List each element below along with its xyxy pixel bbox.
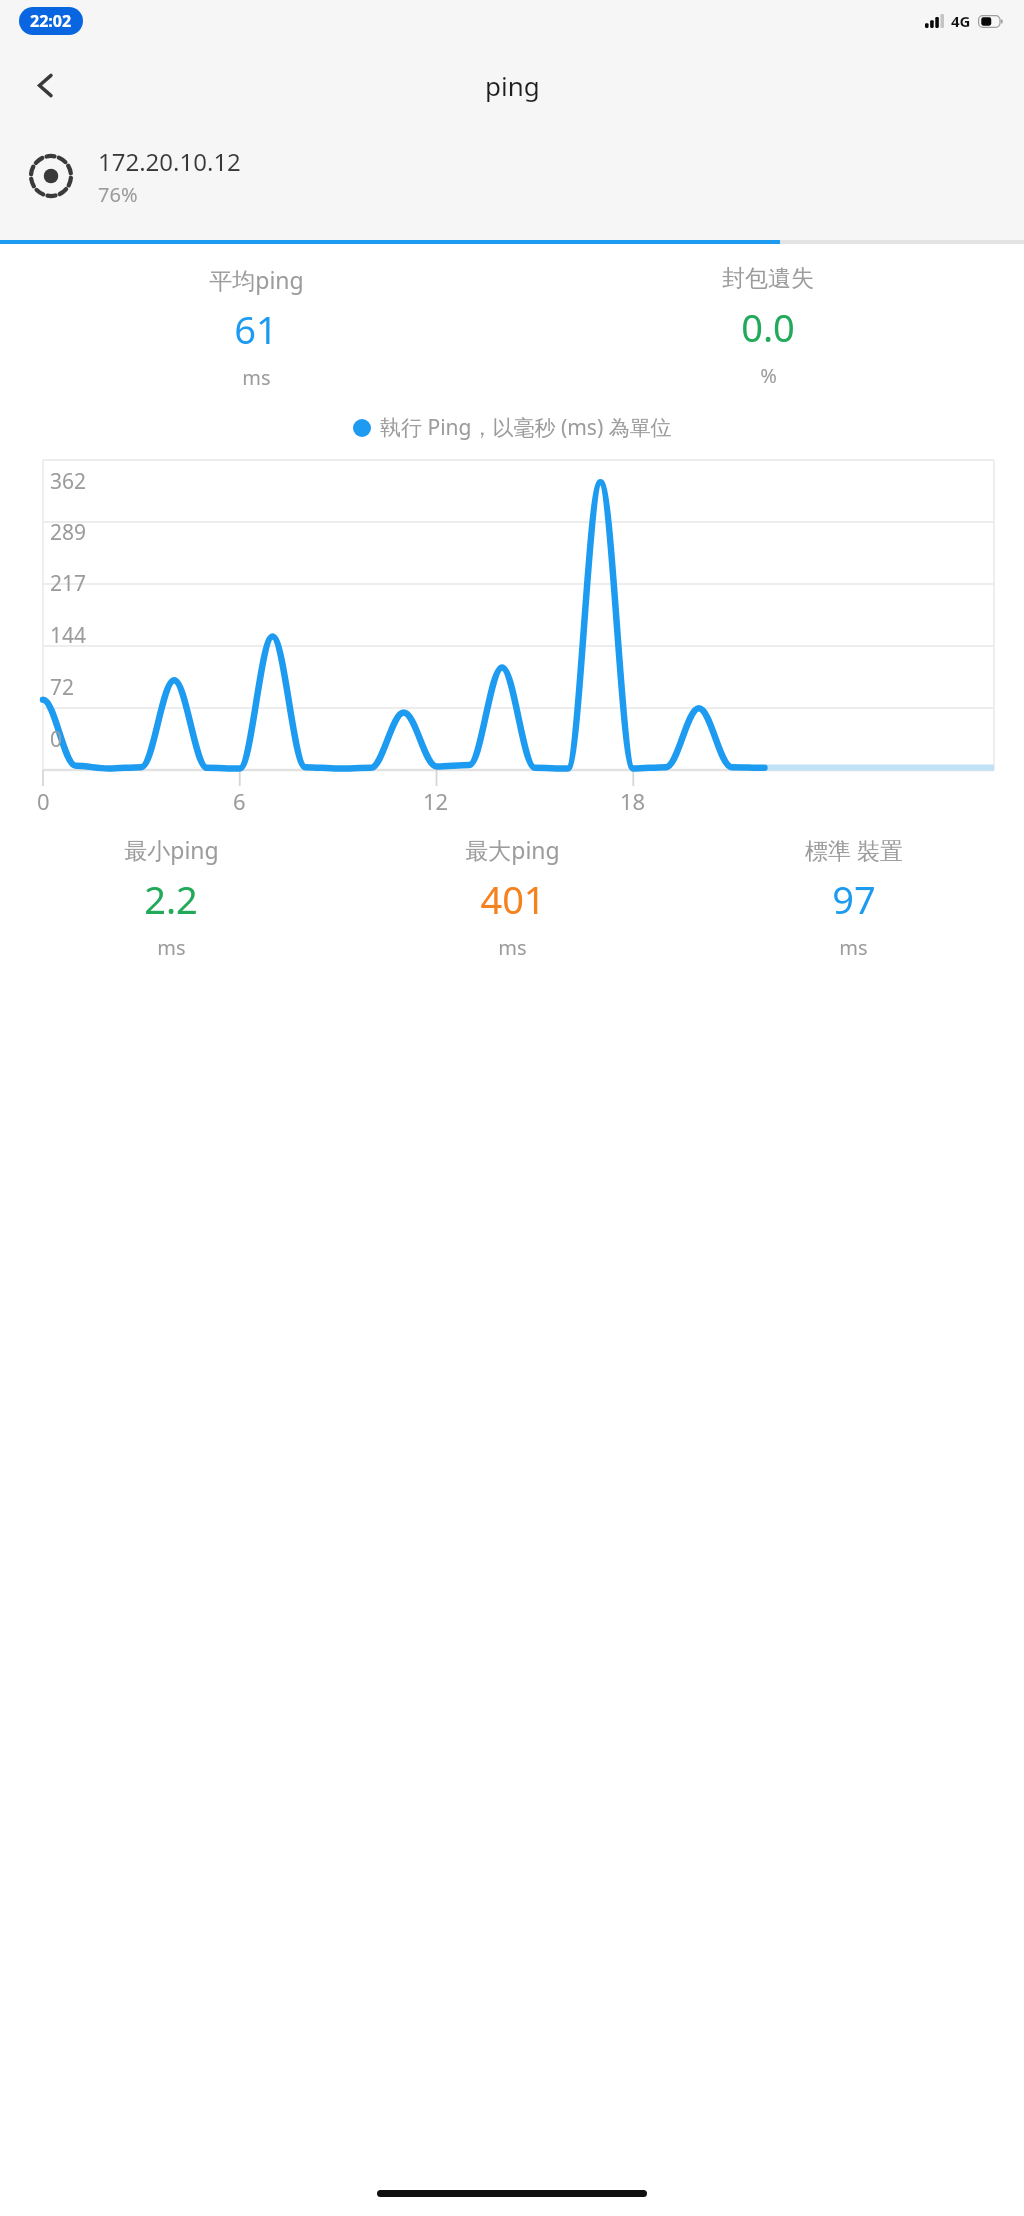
staticText: 4G xyxy=(951,11,971,31)
button[interactable]: 執行 Ping，以毫秒 (ms) 為單位 xyxy=(0,413,1024,442)
button[interactable]: 最大ping xyxy=(342,834,683,961)
button[interactable]: 172.20.10.12 xyxy=(0,128,1024,224)
button[interactable]: 標準 裝置 xyxy=(683,834,1024,961)
staticText: 12 xyxy=(423,786,449,816)
staticText: 401 xyxy=(480,873,546,925)
staticText: 2.2 xyxy=(144,873,198,925)
staticText: 6 xyxy=(233,786,246,816)
staticText: 97 xyxy=(832,873,876,925)
staticText: 最大ping xyxy=(465,834,560,865)
staticText: 217 xyxy=(50,569,87,598)
staticText: % xyxy=(760,362,777,389)
staticText: ms xyxy=(498,934,527,961)
staticText: ping xyxy=(485,68,540,103)
staticText: 封包遺失 xyxy=(722,264,814,293)
button[interactable]: 最小ping xyxy=(0,834,342,961)
staticText: ms xyxy=(157,934,186,961)
staticText: 289 xyxy=(50,518,87,547)
staticText: 平均ping xyxy=(209,264,304,295)
staticText: 18 xyxy=(620,786,646,816)
staticText: ms xyxy=(839,934,868,961)
staticText: 172.20.10.12 xyxy=(98,145,241,178)
button[interactable]: Back xyxy=(16,56,74,114)
staticText: 22:02 xyxy=(30,10,72,32)
staticText: 76% xyxy=(98,181,138,208)
button[interactable]: 平均ping xyxy=(0,264,512,391)
staticText: 標準 裝置 xyxy=(805,834,903,865)
staticText: 362 xyxy=(50,467,87,496)
staticText: ms xyxy=(242,364,271,391)
staticText: 執行 Ping，以毫秒 (ms) 為單位 xyxy=(380,413,672,442)
staticText: 0 xyxy=(37,786,50,816)
staticText: 0 xyxy=(50,725,63,754)
staticText: 72 xyxy=(50,673,75,702)
button[interactable]: 封包遺失 xyxy=(512,264,1024,389)
staticText: 0.0 xyxy=(741,301,795,353)
staticText: 144 xyxy=(50,621,87,650)
staticText: 最小ping xyxy=(124,834,219,865)
button[interactable]: Recording time xyxy=(19,7,83,35)
staticText: 61 xyxy=(234,303,278,355)
